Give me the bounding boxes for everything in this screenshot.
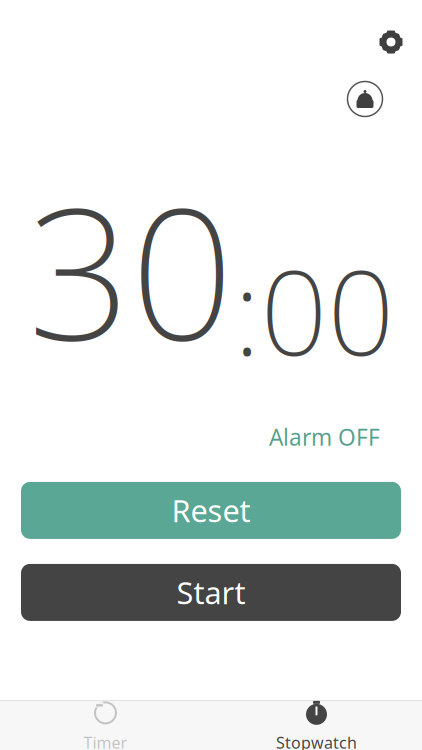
- staticText: :00: [233, 232, 394, 388]
- button[interactable]: Timer: [0, 701, 211, 750]
- staticText: Start: [176, 572, 245, 613]
- staticText: Stopwatch: [276, 732, 357, 750]
- button[interactable]: Alarm: [343, 77, 387, 121]
- staticText: Timer: [83, 732, 127, 750]
- staticText: Reset: [171, 490, 250, 531]
- button[interactable]: Settings: [369, 20, 413, 64]
- button[interactable]: Reset: [21, 482, 401, 539]
- staticText: Alarm OFF: [269, 422, 380, 452]
- staticText: 30: [27, 149, 233, 390]
- button[interactable]: Stopwatch: [211, 701, 422, 750]
- button[interactable]: Start: [21, 564, 401, 621]
